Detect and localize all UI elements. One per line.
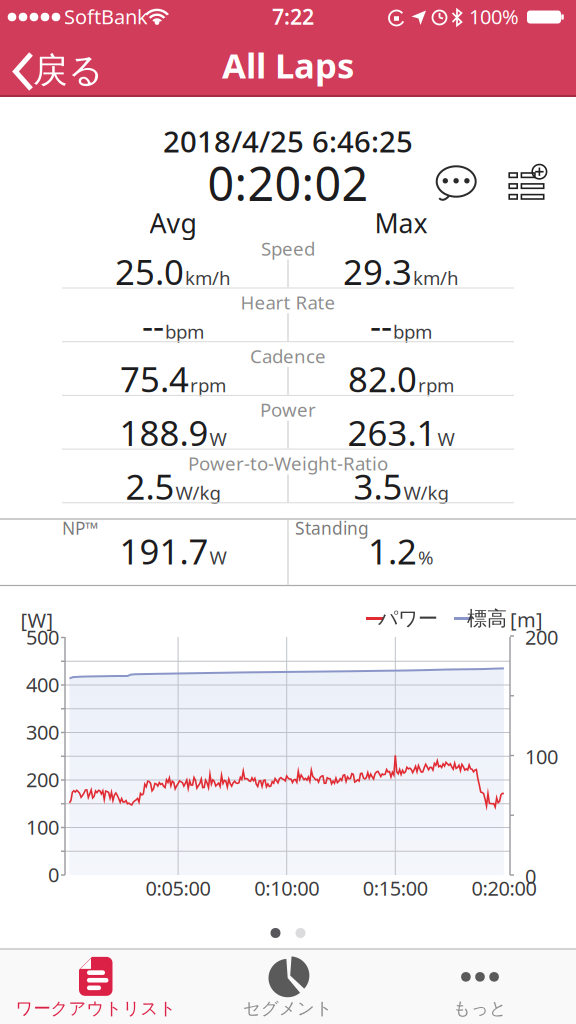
staticText: [W]: [20, 607, 53, 633]
staticText: 0:20:02: [207, 152, 368, 214]
staticText: 0:15:00: [363, 875, 428, 901]
button[interactable]: ラップ追加: [507, 162, 549, 202]
staticText: W: [437, 426, 454, 451]
staticText: 2018/4/25 6:46:25: [163, 121, 413, 160]
staticText: bpm: [393, 319, 432, 344]
staticText: 200: [26, 766, 59, 793]
staticText: 7:22: [272, 2, 314, 31]
staticText: 0:20:00: [471, 875, 536, 901]
staticText: W: [209, 426, 226, 451]
staticText: 戻る: [33, 49, 103, 92]
button[interactable]: コメント: [433, 160, 481, 204]
staticText: rpm: [190, 373, 226, 397]
staticText: rpm: [418, 373, 454, 397]
staticText: 0:05:00: [146, 875, 211, 901]
staticText: --: [370, 302, 392, 348]
staticText: 500: [26, 624, 59, 650]
staticText: All Laps: [222, 42, 354, 88]
staticText: [m]: [510, 606, 543, 633]
staticText: Speed: [261, 236, 315, 261]
staticText: W/kg: [175, 480, 220, 505]
staticText: %: [418, 545, 434, 570]
staticText: bpm: [165, 319, 204, 344]
staticText: 100: [26, 814, 59, 840]
button[interactable]: もっと: [384, 951, 576, 1022]
staticText: 0:10:00: [254, 875, 319, 901]
staticText: 1.2: [368, 528, 417, 574]
staticText: km/h: [185, 265, 231, 290]
button[interactable]: ワークアウトリスト: [0, 951, 192, 1022]
staticText: --: [142, 302, 164, 348]
button[interactable]: 戻る: [0, 49, 100, 93]
staticText: 2.5: [125, 463, 174, 509]
staticText: 29.3: [343, 248, 412, 294]
staticText: 82.0: [348, 356, 417, 402]
staticText: 0: [48, 861, 59, 888]
staticText: W/kg: [403, 480, 448, 505]
staticText: Power-to-Weight-Ratio: [188, 451, 388, 476]
staticText: Power: [260, 397, 316, 422]
staticText: 263.1: [347, 410, 436, 456]
staticText: 300: [26, 719, 59, 745]
staticText: Max: [374, 205, 427, 241]
staticText: 0: [525, 863, 536, 889]
staticText: 3.5: [353, 463, 402, 509]
staticText: パワー: [378, 606, 438, 631]
staticText: W: [209, 545, 226, 570]
staticText: 400: [26, 671, 59, 698]
staticText: 25.0: [115, 248, 184, 294]
staticText: もっと: [453, 998, 507, 1019]
staticText: km/h: [413, 265, 459, 290]
staticText: ワークアウトリスト: [15, 998, 176, 1019]
staticText: Standing: [295, 516, 369, 539]
staticText: セグメント: [243, 998, 333, 1019]
staticText: Heart Rate: [240, 290, 335, 315]
button[interactable]: セグメント: [192, 951, 384, 1022]
staticText: NP™: [62, 516, 98, 539]
staticText: SoftBank: [64, 3, 148, 30]
staticText: Avg: [149, 205, 196, 241]
staticText: 100: [525, 743, 558, 770]
staticText: 100%: [469, 3, 519, 30]
staticText: 200: [525, 624, 558, 650]
staticText: 75.4: [120, 356, 189, 402]
staticText: Cadence: [250, 343, 326, 368]
staticText: 188.9: [119, 410, 208, 456]
staticText: 標高: [467, 606, 507, 631]
staticText: 191.7: [119, 528, 208, 574]
